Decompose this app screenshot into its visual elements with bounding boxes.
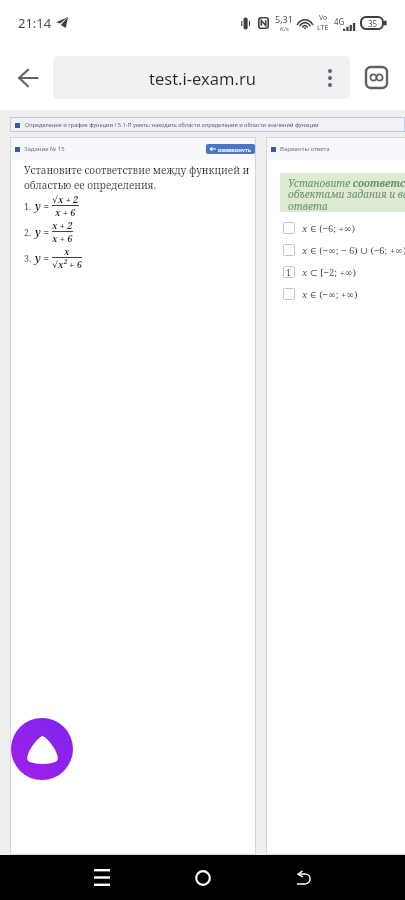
- staticText: x + 6: [55, 206, 76, 218]
- staticText: 1: [286, 266, 292, 278]
- staticText: x: [64, 245, 70, 257]
- staticText: √x + 2: [52, 193, 79, 205]
- staticText: test.i-exam.ru: [149, 67, 256, 89]
- staticText: x + 6: [52, 232, 73, 244]
- staticText: √x² + 6: [52, 258, 82, 270]
- staticText: 21:14: [18, 14, 52, 32]
- staticText: 5,31: [275, 13, 293, 25]
- staticText: y =: [35, 251, 50, 265]
- staticText: LTE: [317, 23, 329, 33]
- button[interactable]: test.i-exam.ru: [53, 56, 350, 99]
- button[interactable]: x ∈ (−∞; +∞): [266, 283, 405, 305]
- staticText: K/s: [280, 25, 289, 33]
- staticText: x + 2: [52, 219, 73, 231]
- button[interactable]: Home: [152, 855, 253, 900]
- staticText: развернуть: [218, 146, 252, 152]
- staticText: 35: [368, 18, 378, 29]
- button[interactable]: Recents: [51, 855, 152, 900]
- button[interactable]: Alice assistant: [11, 718, 73, 780]
- staticText: Варианты ответа: [280, 145, 330, 153]
- staticText: x ∈ (−∞; − 6) ∪ (−6; +∞): [302, 244, 405, 257]
- staticText: y =: [35, 199, 50, 213]
- staticText: 3.: [24, 252, 32, 264]
- staticText: x ∈ (−6; +∞): [302, 222, 355, 235]
- staticText: Установите соответствие между объектами …: [288, 176, 405, 212]
- button[interactable]: Back: [8, 58, 48, 98]
- staticText: Определение и график функции / 5.1-П уме…: [25, 121, 319, 129]
- staticText: 4G: [334, 16, 345, 27]
- button[interactable]: Back: [253, 855, 354, 900]
- staticText: Установите соответствие между функцией и…: [24, 163, 250, 192]
- staticText: x ⊂ [−2; +∞): [302, 266, 357, 279]
- button[interactable]: x ∈ (−∞; − 6) ∪ (−6; +∞): [266, 239, 405, 261]
- staticText: 2.: [24, 226, 32, 238]
- button[interactable]: More options: [310, 56, 350, 99]
- button[interactable]: Tabs: [365, 66, 388, 89]
- staticText: Задание № 15: [24, 145, 65, 153]
- button[interactable]: x ∈ (−6; +∞): [266, 217, 405, 239]
- staticText: y =: [35, 225, 50, 239]
- staticText: Vo: [319, 13, 328, 23]
- staticText: x ∈ (−∞; +∞): [302, 288, 358, 301]
- button[interactable]: развернуть: [206, 144, 255, 154]
- staticText: 1.: [24, 200, 32, 212]
- button[interactable]: 1: [266, 261, 405, 283]
